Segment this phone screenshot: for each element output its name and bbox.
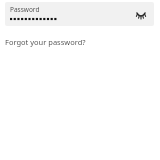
button[interactable]: Hide password [134,7,148,21]
staticText: Password [10,5,40,14]
button[interactable]: Password [5,2,154,26]
button[interactable]: Forgot your password? [5,37,86,47]
staticText: Forgot your password? [5,37,86,47]
